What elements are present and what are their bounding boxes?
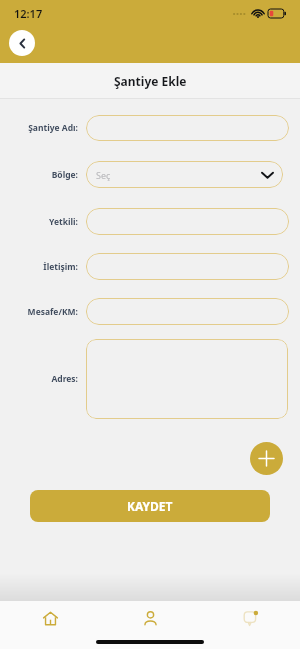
staticText: Şantiye Adı:: [28, 122, 78, 134]
staticText: 12:17: [14, 6, 43, 21]
button[interactable]: Add: [250, 442, 283, 475]
staticText: Yetkili:: [49, 216, 78, 228]
button[interactable]: KAYDET: [30, 490, 270, 522]
button[interactable]: [86, 298, 289, 325]
button[interactable]: Profile: [100, 601, 200, 635]
staticText: Bölge:: [51, 169, 78, 181]
button[interactable]: [86, 253, 289, 280]
button[interactable]: [86, 208, 289, 235]
button[interactable]: Home: [0, 601, 100, 635]
staticText: Şantiye Ekle: [114, 73, 187, 89]
button[interactable]: [86, 339, 288, 419]
button[interactable]: Messages: [200, 601, 300, 635]
button[interactable]: Seç: [86, 161, 283, 188]
button[interactable]: Back: [9, 30, 35, 56]
button[interactable]: [86, 115, 289, 141]
staticText: KAYDET: [127, 498, 173, 514]
staticText: Seç: [96, 169, 111, 181]
staticText: Adres:: [51, 373, 78, 385]
staticText: Mesafe/KM:: [27, 306, 78, 318]
staticText: İletişim:: [43, 261, 78, 273]
